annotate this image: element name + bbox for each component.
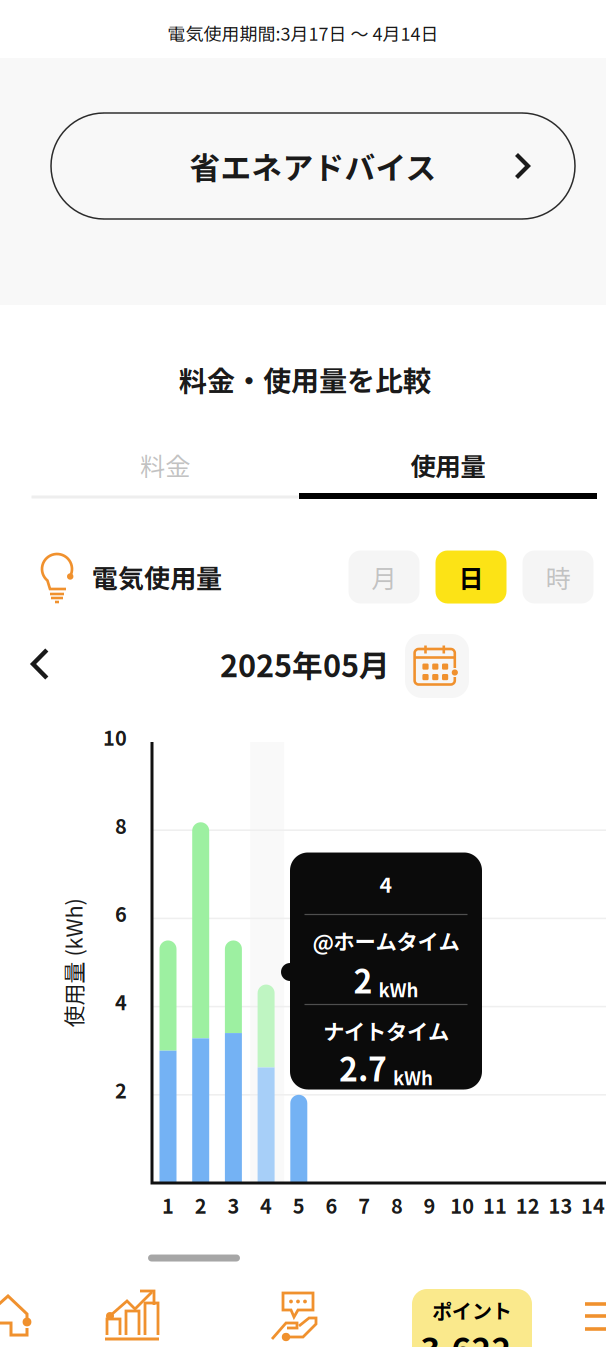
staticText: ポイント <box>432 1295 512 1324</box>
staticText: 4 <box>260 1190 272 1219</box>
staticText: 時 <box>545 559 570 595</box>
staticText: 7 <box>358 1190 370 1219</box>
button[interactable]: ポイント <box>412 1289 532 1347</box>
staticText: 2 <box>115 1075 127 1104</box>
button[interactable]: 月 <box>348 550 419 603</box>
staticText: 4 <box>379 868 392 899</box>
staticText: 料金 <box>140 447 190 483</box>
staticText: 2 <box>195 1190 207 1219</box>
staticText: 3 <box>227 1190 239 1219</box>
staticText: 2 <box>353 956 372 1003</box>
button[interactable]: メニュー <box>585 1302 606 1334</box>
staticText: 4 <box>115 987 127 1016</box>
button[interactable]: 省エネアドバイス <box>51 113 575 219</box>
button[interactable]: ホーム <box>0 1290 41 1342</box>
button[interactable]: グラフ <box>105 1289 159 1341</box>
staticText: 12 <box>516 1190 540 1219</box>
button[interactable]: チャット <box>271 1289 325 1343</box>
staticText: 使用量 (kWh) <box>8 947 137 979</box>
staticText: 8 <box>115 811 127 840</box>
staticText: ナイトタイム <box>323 1015 449 1046</box>
staticText: kWh <box>393 1064 433 1091</box>
staticText: 10 <box>450 1190 474 1219</box>
staticText: kWh <box>378 976 418 1003</box>
staticText: 月 <box>371 559 396 595</box>
staticText: 2025年05月 <box>220 642 390 686</box>
staticText: 11 <box>483 1190 507 1219</box>
staticText: 6 <box>115 899 127 928</box>
staticText: 5 <box>293 1190 305 1219</box>
button[interactable]: カレンダーを開く <box>405 634 469 698</box>
staticText: 14 <box>581 1190 605 1219</box>
staticText: 使用量 <box>410 447 485 483</box>
staticText: 2.7 <box>339 1044 387 1091</box>
staticText: 8 <box>391 1190 403 1219</box>
staticText: 省エネアドバイス <box>189 144 436 188</box>
staticText: 10 <box>103 722 127 751</box>
staticText: 日 <box>458 559 483 595</box>
staticText: 6 <box>325 1190 337 1219</box>
staticText: 3,622 <box>420 1324 511 1347</box>
staticText: 1 <box>162 1190 174 1219</box>
staticText: 料金・使用量を比較 <box>179 359 431 399</box>
staticText: 13 <box>548 1190 572 1219</box>
button[interactable]: 料金 <box>32 434 299 524</box>
staticText: 9 <box>424 1190 436 1219</box>
button[interactable]: 使用量 <box>299 434 597 524</box>
staticText: 電気使用期間:3月17日 〜 4月14日 <box>167 20 438 46</box>
button[interactable]: 前の月 <box>13 637 67 691</box>
button[interactable]: 時 <box>522 550 593 603</box>
staticText: 電気使用量 <box>92 558 222 596</box>
button[interactable]: 日 <box>435 550 506 603</box>
staticText: @ホームタイム <box>312 925 459 956</box>
